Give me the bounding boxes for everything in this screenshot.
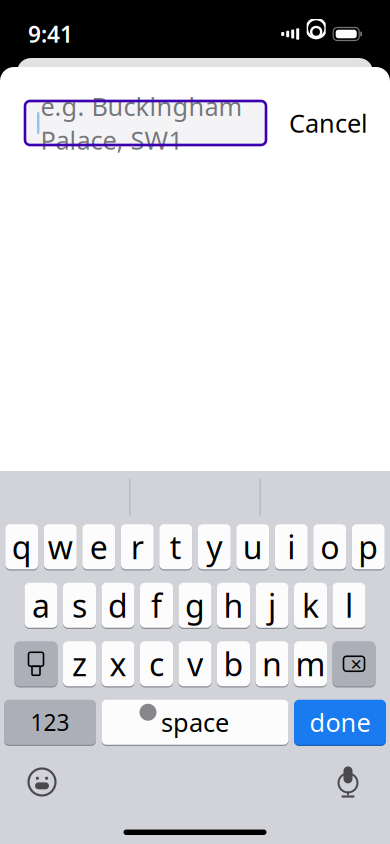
button[interactable]: y: [198, 523, 231, 570]
staticText: j: [268, 584, 276, 626]
staticText: s: [72, 584, 87, 626]
button[interactable]: o: [313, 523, 346, 570]
staticText: space: [161, 705, 229, 739]
button[interactable]: f: [140, 581, 173, 629]
button[interactable]: Dictation: [326, 762, 370, 802]
button[interactable]: done: [294, 698, 386, 746]
staticText: c: [149, 642, 164, 685]
button[interactable]: space: [101, 698, 288, 746]
staticText: x: [109, 642, 126, 685]
staticText: e: [90, 525, 108, 568]
staticText: a: [32, 584, 50, 626]
staticText: t: [170, 525, 182, 568]
button[interactable]: r: [121, 523, 154, 570]
staticText: z: [72, 642, 87, 685]
staticText: o: [320, 525, 339, 568]
staticText: n: [262, 642, 282, 685]
button[interactable]: w: [44, 523, 77, 570]
button[interactable]: Delete: [332, 640, 375, 687]
staticText: y: [206, 525, 222, 568]
button[interactable]: a: [24, 581, 57, 629]
button[interactable]: z: [63, 640, 96, 687]
button[interactable]: e: [82, 523, 115, 570]
button[interactable]: u: [236, 523, 269, 570]
staticText: v: [187, 642, 203, 685]
button[interactable]: l: [332, 581, 365, 629]
staticText: 123: [30, 707, 69, 737]
staticText: q: [12, 525, 32, 568]
staticText: g: [185, 584, 205, 626]
staticText: d: [108, 584, 128, 626]
staticText: k: [302, 584, 319, 626]
button[interactable]: c: [140, 640, 173, 687]
button[interactable]: Emoji: [20, 762, 64, 802]
button[interactable]: k: [294, 581, 327, 629]
button[interactable]: d: [101, 581, 134, 629]
staticText: m: [295, 642, 325, 685]
staticText: done: [309, 705, 370, 739]
button[interactable]: h: [217, 581, 250, 629]
button[interactable]: t: [159, 523, 192, 570]
button[interactable]: s: [63, 581, 96, 629]
button[interactable]: Cancel: [279, 101, 378, 145]
button[interactable]: v: [178, 640, 211, 687]
staticText: e.g. Buckingham Palace, SW1: [40, 89, 242, 157]
staticText: h: [223, 584, 243, 626]
button[interactable]: x: [101, 640, 134, 687]
button[interactable]: m: [294, 640, 327, 687]
button[interactable]: i: [275, 523, 308, 570]
staticText: Cancel: [289, 106, 368, 140]
button[interactable]: j: [255, 581, 288, 629]
staticText: i: [287, 525, 295, 568]
button[interactable]: q: [5, 523, 38, 570]
staticText: ×: [350, 650, 361, 677]
staticText: 9:41: [28, 19, 73, 49]
button[interactable]: 123: [4, 698, 96, 746]
button[interactable]: e.g. Buckingham Palace, SW1: [25, 101, 266, 145]
staticText: f: [151, 584, 162, 626]
staticText: u: [243, 525, 263, 568]
button[interactable]: Shift: [14, 640, 57, 687]
staticText: p: [358, 525, 378, 568]
staticText: l: [345, 584, 353, 626]
button[interactable]: p: [352, 523, 385, 570]
button[interactable]: n: [255, 640, 288, 687]
button[interactable]: g: [178, 581, 211, 629]
button[interactable]: b: [217, 640, 250, 687]
staticText: r: [131, 525, 144, 568]
staticText: w: [48, 525, 73, 568]
staticText: b: [223, 642, 243, 685]
